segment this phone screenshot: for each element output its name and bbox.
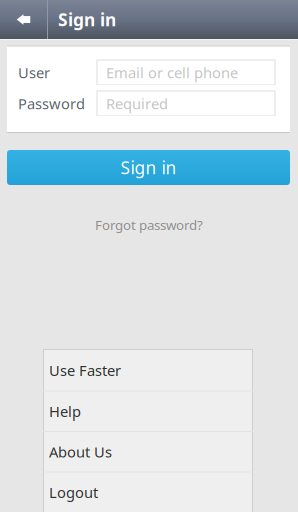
button[interactable]: Back: [0, 0, 47, 39]
button[interactable]: Email or cell phone: [97, 60, 275, 85]
button[interactable]: Forgot password?: [90, 211, 208, 239]
staticText: Forgot password?: [95, 216, 203, 234]
staticText: Sign in: [58, 8, 116, 31]
staticText: Password: [18, 94, 85, 113]
button[interactable]: Use Faster: [43, 350, 253, 390]
staticText: User: [18, 63, 50, 82]
staticText: Sign in: [120, 156, 176, 179]
staticText: Use Faster: [49, 360, 121, 380]
staticText: Required: [106, 94, 168, 113]
staticText: About Us: [49, 442, 112, 461]
button[interactable]: Help: [43, 390, 253, 431]
staticText: Email or cell phone: [106, 63, 238, 82]
button[interactable]: Required: [97, 91, 275, 116]
button[interactable]: Sign in: [7, 150, 290, 185]
staticText: Help: [49, 401, 81, 421]
button[interactable]: About Us: [43, 431, 253, 471]
staticText: Logout: [49, 482, 98, 502]
button[interactable]: Logout: [43, 471, 253, 512]
